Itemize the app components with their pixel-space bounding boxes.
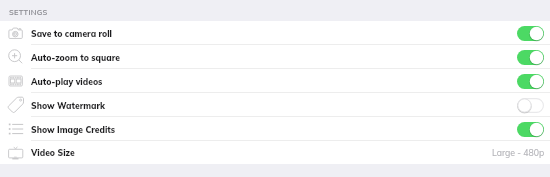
- button[interactable]: Show Watermark off: [517, 98, 544, 113]
- button[interactable]: Save to camera roll: [0, 21, 550, 45]
- button[interactable]: Auto-play videos on: [517, 74, 544, 89]
- staticText: Save to camera roll: [31, 28, 113, 39]
- staticText: Large - 480p: [492, 147, 545, 158]
- staticText: Auto-zoom to square: [31, 52, 120, 63]
- button[interactable]: Auto-zoom to square: [0, 45, 550, 69]
- staticText: SETTINGS: [9, 7, 48, 16]
- staticText: Auto-play videos: [31, 76, 103, 87]
- button[interactable]: Show Image Credits on: [517, 122, 544, 137]
- staticText: Show Image Credits: [31, 124, 116, 135]
- staticText: Video Size: [31, 147, 75, 158]
- staticText: Show Watermark: [31, 100, 106, 111]
- button[interactable]: Save to camera roll on: [517, 26, 544, 41]
- button[interactable]: Auto-zoom to square on: [517, 50, 544, 65]
- button[interactable]: Show Watermark: [0, 93, 550, 117]
- button[interactable]: Auto-play videos: [0, 69, 550, 93]
- button[interactable]: Video Size: [0, 141, 550, 164]
- button[interactable]: Show Image Credits: [0, 117, 550, 141]
